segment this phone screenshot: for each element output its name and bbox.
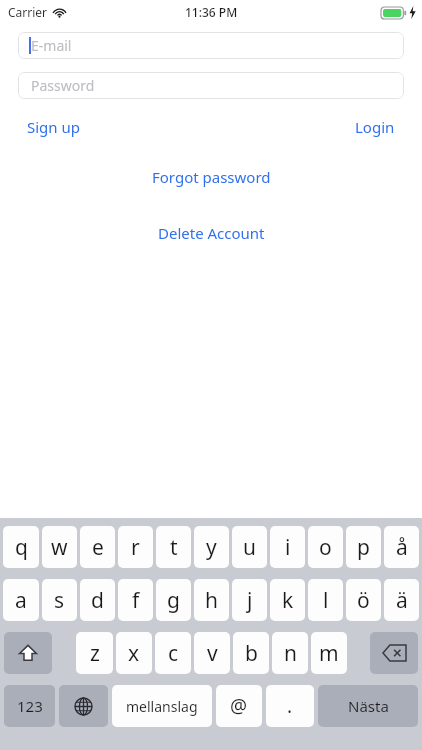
button[interactable]: i [270, 526, 305, 568]
button[interactable]: @ [216, 685, 262, 727]
button[interactable]: o [308, 526, 343, 568]
staticText: 123 [17, 696, 43, 716]
staticText: y [206, 533, 217, 562]
staticText: k [282, 586, 294, 615]
staticText: Nästa [348, 696, 389, 716]
staticText: g [167, 586, 180, 615]
staticText: c [168, 639, 179, 668]
staticText: Carrier [8, 4, 48, 20]
button[interactable]: x [116, 632, 152, 674]
staticText: h [205, 586, 218, 615]
button[interactable]: Password [18, 72, 404, 99]
staticText: w [51, 533, 68, 562]
button[interactable]: h [194, 579, 229, 621]
button[interactable]: b [233, 632, 269, 674]
button[interactable]: a [3, 579, 39, 621]
staticText: j [247, 586, 253, 615]
button[interactable]: 123 [4, 685, 55, 727]
button[interactable]: j [232, 579, 267, 621]
button[interactable]: v [194, 632, 230, 674]
staticText: q [15, 533, 28, 562]
button[interactable]: d [80, 579, 115, 621]
button[interactable]: y [194, 526, 229, 568]
button[interactable]: m [311, 632, 347, 674]
staticText: z [90, 639, 100, 668]
staticText: Password [31, 76, 95, 95]
button[interactable]: . [266, 685, 314, 727]
button[interactable]: c [155, 632, 191, 674]
button[interactable]: u [232, 526, 267, 568]
button[interactable]: s [42, 579, 77, 621]
staticText: s [54, 586, 65, 615]
button[interactable]: mellanslag [112, 685, 212, 727]
button[interactable]: f [118, 579, 153, 621]
staticText: Login [355, 117, 395, 137]
button[interactable]: z [76, 632, 113, 674]
button[interactable]: ä [384, 579, 419, 621]
staticText: Forgot password [152, 167, 271, 187]
staticText: e [92, 533, 104, 562]
button[interactable]: w [42, 526, 77, 568]
button[interactable]: Nästa [318, 685, 418, 727]
button[interactable]: k [270, 579, 305, 621]
button[interactable]: e [80, 526, 115, 568]
button[interactable]: t [156, 526, 191, 568]
staticText: E-mail [31, 36, 72, 55]
staticText: @ [230, 693, 248, 719]
button[interactable]: Sign up [27, 117, 80, 137]
button[interactable]: Shift [4, 632, 52, 674]
staticText: Sign up [27, 117, 80, 137]
staticText: d [91, 586, 104, 615]
staticText: 11:36 PM [185, 4, 238, 20]
staticText: ö [357, 586, 370, 615]
button[interactable]: Backspace [370, 632, 418, 674]
button[interactable]: l [308, 579, 343, 621]
staticText: . [287, 693, 293, 719]
button[interactable]: Delete Account [158, 223, 265, 243]
button[interactable]: Change keyboard language [59, 685, 108, 727]
staticText: ä [396, 586, 408, 615]
staticText: mellanslag [126, 697, 198, 716]
staticText: Delete Account [158, 223, 265, 243]
button[interactable]: E-mail [18, 32, 404, 59]
staticText: u [243, 533, 256, 562]
button[interactable]: r [118, 526, 153, 568]
staticText: n [284, 639, 297, 668]
button[interactable]: Forgot password [152, 167, 271, 187]
staticText: a [15, 586, 27, 615]
staticText: l [323, 586, 329, 615]
staticText: t [170, 533, 178, 562]
staticText: o [319, 533, 332, 562]
staticText: m [319, 639, 339, 668]
button[interactable]: å [384, 526, 419, 568]
staticText: f [132, 586, 140, 615]
button[interactable]: n [272, 632, 308, 674]
staticText: p [357, 533, 370, 562]
staticText: å [396, 533, 408, 562]
button[interactable]: q [3, 526, 39, 568]
staticText: x [128, 639, 140, 668]
staticText: i [285, 533, 291, 562]
button[interactable]: g [156, 579, 191, 621]
staticText: v [207, 639, 218, 668]
staticText: r [131, 533, 140, 562]
button[interactable]: ö [346, 579, 381, 621]
staticText: b [245, 639, 258, 668]
button[interactable]: p [346, 526, 381, 568]
button[interactable]: Login [355, 117, 395, 137]
